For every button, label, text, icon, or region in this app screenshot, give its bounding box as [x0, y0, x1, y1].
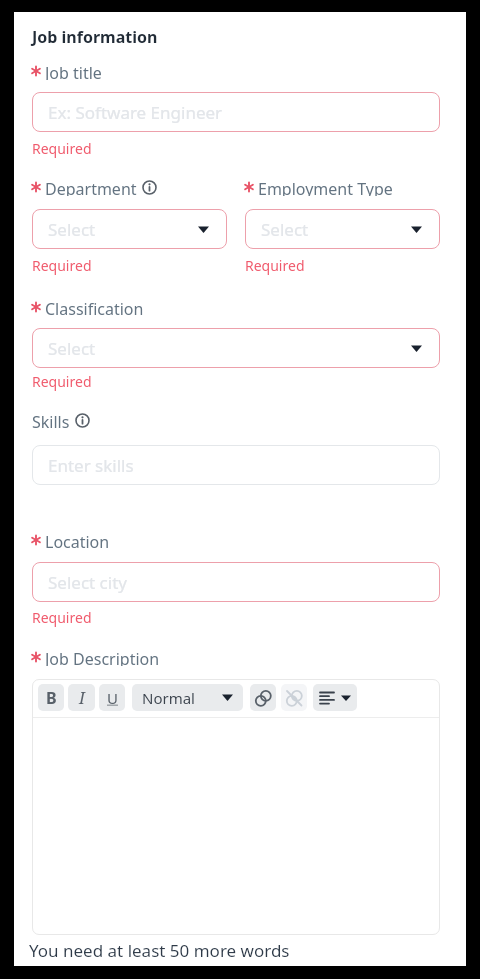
staticText: Select — [261, 218, 309, 241]
staticText: Normal — [142, 688, 195, 708]
staticText: Employment Type — [258, 178, 393, 196]
button[interactable] — [313, 684, 357, 711]
button[interactable]: Enter skills — [32, 445, 440, 485]
staticText: Classification — [45, 298, 144, 316]
button[interactable]: U — [99, 684, 125, 711]
staticText: U — [107, 688, 118, 708]
staticText: Job title — [45, 62, 102, 80]
button[interactable] — [250, 684, 276, 711]
staticText: Location — [45, 531, 110, 549]
staticText: Select — [48, 337, 96, 360]
staticText: Select city — [48, 571, 127, 594]
staticText: Required — [245, 256, 305, 275]
staticText: Required — [32, 256, 92, 275]
button[interactable]: Ex: Software Engineer — [32, 92, 440, 132]
staticText: Job Description — [45, 648, 160, 666]
button[interactable]: I — [68, 684, 95, 711]
button[interactable]: Select city — [32, 562, 440, 602]
staticText: Required — [32, 139, 92, 158]
button[interactable]: B — [38, 684, 64, 711]
staticText: You need at least 50 more words — [29, 939, 290, 962]
staticText: I — [79, 687, 85, 709]
staticText: Ex: Software Engineer — [48, 101, 223, 124]
button[interactable]: Select — [245, 209, 440, 249]
button[interactable]: Select — [32, 328, 440, 368]
staticText: Enter skills — [48, 454, 134, 477]
staticText: Select — [48, 218, 96, 241]
button[interactable]: Select — [32, 209, 227, 249]
button[interactable] — [281, 684, 307, 711]
button[interactable]: Normal — [132, 684, 243, 711]
staticText: B — [46, 687, 57, 709]
staticText: Job information — [32, 26, 158, 48]
staticText: Department — [45, 178, 137, 196]
staticText: Required — [32, 608, 92, 627]
staticText: Required — [32, 372, 92, 391]
staticText: Skills — [32, 411, 70, 429]
